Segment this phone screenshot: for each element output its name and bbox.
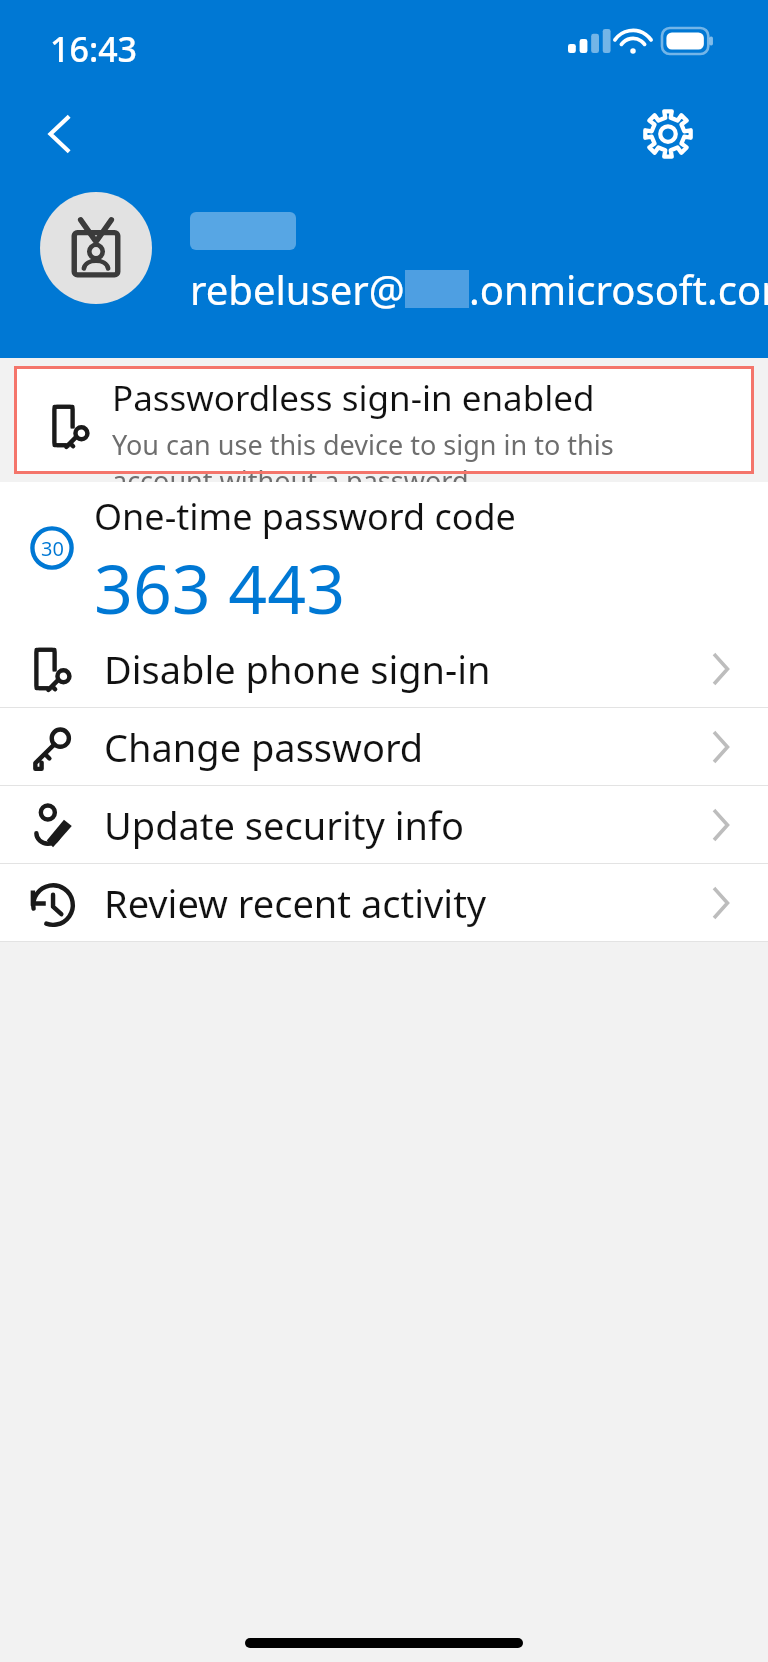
staticText: Change password [104,721,424,773]
staticText: Review recent activity [104,877,487,929]
staticText: 30 [41,535,64,562]
staticText: .onmicrosoft.com [469,262,768,316]
staticText: One-time password code [94,492,516,541]
staticText: Passwordless sign-in enabled [112,374,595,422]
button[interactable]: Passwordless sign-in enabled [14,366,754,474]
button[interactable]: Update security info [0,786,768,863]
button[interactable]: 30 [0,482,768,630]
button[interactable]: Review recent activity [0,864,768,941]
button[interactable]: Settings [620,86,716,182]
staticText: 363 443 [94,541,346,634]
staticText: You can use this device to sign in to th… [112,426,686,482]
button[interactable]: Disable phone sign-in [0,630,768,707]
button[interactable]: Back [12,86,108,182]
staticText: 16:43 [50,26,138,72]
staticText: Update security info [104,799,465,851]
staticText: rebeluser@ [190,262,405,316]
button[interactable]: Change password [0,708,768,785]
staticText: Disable phone sign-in [104,643,491,695]
button[interactable]: Account avatar [40,192,152,304]
